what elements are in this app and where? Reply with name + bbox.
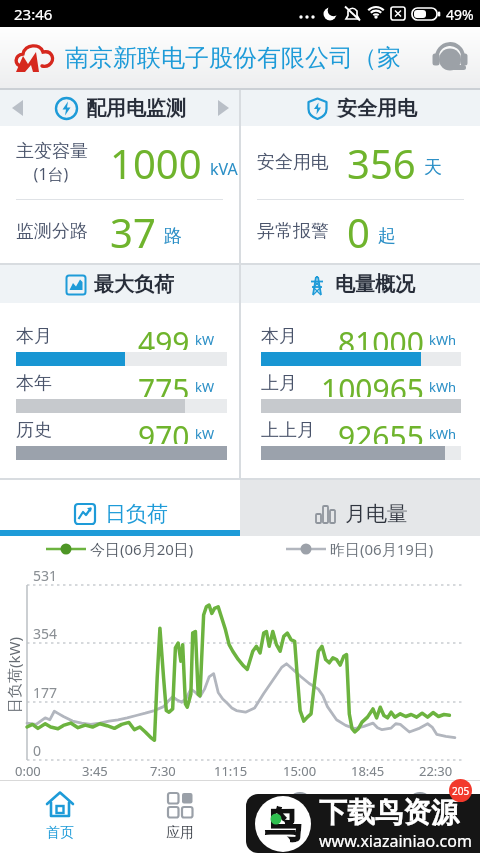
staticText: 23:46 [14, 4, 53, 24]
button[interactable]: 最大负荷 [0, 265, 239, 303]
staticText: 11:15 [214, 762, 248, 780]
staticText: 配用电监测 [86, 96, 186, 121]
staticText: 监测分路 [16, 220, 88, 243]
staticText: 18:45 [351, 762, 385, 780]
staticText: 安全用电 [257, 151, 329, 174]
staticText: 最大负荷 [94, 272, 174, 297]
staticText: 775 [138, 369, 190, 397]
staticText: 499 [138, 322, 190, 350]
staticText: kW [195, 425, 215, 443]
staticText: 0:00 [15, 762, 41, 780]
staticText: 100965 [321, 369, 424, 397]
button[interactable]: 消息 [240, 781, 360, 853]
staticText: 昨日(06月19日) [330, 539, 434, 559]
button[interactable]: 配用电监测 [0, 90, 239, 126]
staticText: kW [195, 378, 215, 396]
staticText: kW [195, 331, 215, 349]
button[interactable]: 安全用电 [241, 90, 480, 126]
staticText: 354 [33, 624, 58, 643]
button[interactable]: 电量概况 [241, 265, 480, 303]
button[interactable]: 日负荷 [0, 480, 240, 536]
staticText: 南京新联电子股份有限公司（家园） [65, 43, 415, 73]
button[interactable]: 上月 [261, 369, 461, 416]
staticText: 路 [164, 225, 182, 248]
staticText: 92655 [338, 416, 424, 444]
staticText: 历史 [16, 419, 52, 442]
button[interactable]: 首页 [0, 781, 120, 853]
button[interactable] [428, 36, 472, 80]
staticText: 205 [452, 784, 470, 798]
staticText: kVA [210, 158, 238, 180]
button[interactable]: 本月 [16, 322, 227, 369]
staticText: 日负荷 [105, 501, 168, 527]
staticText: www.xiazainiao.com [319, 830, 472, 852]
staticText: 电量概况 [335, 272, 415, 297]
staticText: 本月 [261, 325, 297, 348]
staticText: 天 [424, 156, 442, 179]
staticText: kWh [429, 378, 457, 396]
button[interactable]: 本月 [261, 322, 461, 369]
staticText: 本年 [16, 372, 52, 395]
staticText: 15:00 [283, 762, 317, 780]
staticText: 月电量 [345, 501, 408, 527]
staticText: 下载鸟资源 [319, 795, 459, 830]
staticText: 7:30 [150, 762, 176, 780]
staticText: (1台) [16, 163, 86, 185]
staticText: 3:45 [82, 762, 108, 780]
staticText: 177 [33, 683, 58, 702]
staticText: 应用 [166, 824, 194, 842]
staticText: 消息 [286, 824, 314, 842]
staticText: kWh [429, 331, 457, 349]
button[interactable]: 本年 [16, 369, 227, 416]
staticText: 970 [138, 416, 190, 444]
staticText: 上月 [261, 372, 297, 395]
button[interactable]: 月电量 [240, 480, 480, 536]
staticText: 起 [378, 225, 396, 248]
button[interactable]: 应用 [120, 781, 240, 853]
staticText: 本月 [16, 325, 52, 348]
staticText: 22:30 [419, 762, 453, 780]
staticText: 356 [347, 136, 416, 190]
button[interactable]: 上上月 [261, 416, 461, 463]
staticText: 37 [110, 205, 156, 259]
staticText: 81000 [338, 322, 424, 350]
staticText: 鸟 [265, 802, 301, 847]
staticText: 49% [446, 5, 474, 24]
staticText: 今日(06月20日) [90, 539, 194, 559]
staticText: 我的 [406, 824, 434, 842]
staticText: 首页 [46, 824, 74, 842]
button[interactable]: 历史 [16, 416, 227, 463]
button[interactable]: 鸟 [246, 794, 480, 853]
button[interactable]: 我的 [360, 781, 480, 853]
staticText: 1000 [110, 136, 202, 190]
staticText: 531 [33, 566, 58, 585]
staticText: 日负荷(kW) [4, 637, 24, 713]
staticText: 上上月 [261, 419, 315, 442]
staticText: 0 [347, 205, 370, 259]
staticText: kWh [429, 425, 457, 443]
staticText: 主变容量 [16, 140, 88, 163]
staticText: 异常报警 [257, 220, 329, 243]
staticText: 0 [33, 741, 42, 760]
staticText: 安全用电 [337, 96, 417, 121]
